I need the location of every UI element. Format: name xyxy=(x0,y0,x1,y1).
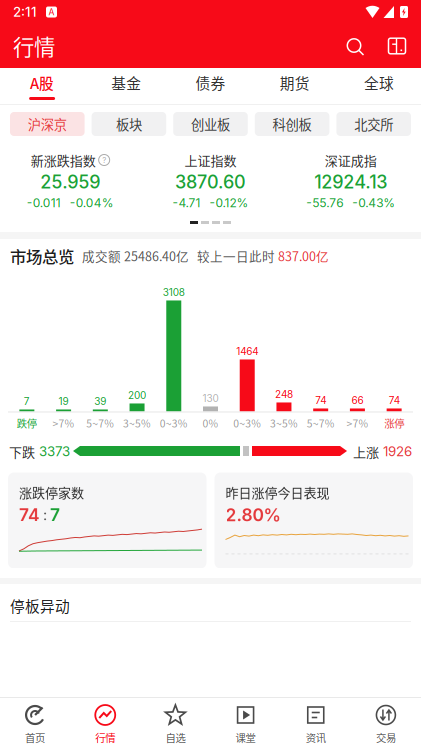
staticText: 2:11 xyxy=(13,4,37,20)
staticText: 首页 xyxy=(25,730,45,745)
staticText: -0.12% xyxy=(209,196,248,210)
staticText: 全球 xyxy=(364,72,394,93)
button[interactable]: 课堂 xyxy=(210,698,281,748)
staticText: 资讯 xyxy=(306,730,326,745)
staticText: 3870.60 xyxy=(175,171,246,193)
staticText: 74 xyxy=(389,394,400,406)
staticText: 0~3% xyxy=(160,415,188,431)
staticText: -55.76 xyxy=(306,196,343,210)
button[interactable]: 行情 xyxy=(70,698,140,748)
staticText: A xyxy=(48,7,54,17)
button[interactable]: 资讯 xyxy=(281,698,351,748)
staticText: 沪深京 xyxy=(28,114,67,134)
staticText: 3108 xyxy=(163,286,185,298)
staticText: 行情 xyxy=(13,31,55,61)
staticText: >7% xyxy=(346,415,368,431)
staticText: 1464 xyxy=(236,345,258,357)
staticText: 昨日涨停今日表现 xyxy=(225,482,329,501)
staticText: 债券 xyxy=(195,72,225,93)
staticText: 创业板 xyxy=(191,114,230,134)
staticText: 课堂 xyxy=(236,730,256,745)
staticText: 涨跌停家数 xyxy=(19,482,84,501)
staticText: -4.71 xyxy=(172,196,200,210)
staticText: 上证指数 xyxy=(184,150,236,169)
staticText: 25.959 xyxy=(40,171,100,193)
button[interactable]: 创业板 xyxy=(173,112,248,136)
staticText: 行情 xyxy=(95,730,115,745)
staticText: 较上一日此时 xyxy=(197,247,275,265)
button[interactable]: 基金 xyxy=(84,68,168,104)
staticText: 0% xyxy=(202,415,218,431)
staticText: 7 xyxy=(24,395,30,407)
staticText: 成交额 25486.40亿 xyxy=(82,247,189,265)
staticText: 停板异动 xyxy=(10,595,70,616)
button[interactable]: 自选 xyxy=(140,698,210,748)
staticText: 跌停 xyxy=(17,415,37,431)
button[interactable]: 全球 xyxy=(337,68,421,104)
button[interactable]: 涨跌停家数 xyxy=(8,472,206,568)
button[interactable]: 搜索 xyxy=(344,35,366,57)
button[interactable]: 交易 xyxy=(351,698,421,748)
staticText: 0~3% xyxy=(233,415,261,431)
staticText: 2.80% xyxy=(225,504,280,525)
button[interactable]: 北交所 xyxy=(336,112,411,136)
button[interactable]: 昨日涨停今日表现 xyxy=(214,472,413,568)
staticText: 深证成指 xyxy=(325,150,377,169)
staticText: 5~7% xyxy=(86,415,114,431)
staticText: -0.43% xyxy=(352,196,395,210)
staticText: 科创板 xyxy=(273,114,312,134)
button[interactable]: 债券 xyxy=(168,68,253,104)
staticText: A股 xyxy=(30,72,54,93)
staticText: 1926 xyxy=(383,443,412,459)
button[interactable]: 板块 xyxy=(92,112,166,136)
staticText: 837.00亿 xyxy=(278,247,329,265)
staticText: 12924.13 xyxy=(314,171,387,193)
staticText: 130 xyxy=(202,392,218,404)
staticText: -0.011 xyxy=(27,196,61,210)
staticText: : xyxy=(43,506,47,524)
staticText: 涨停 xyxy=(384,415,404,431)
staticText: 3~5% xyxy=(123,415,151,431)
button[interactable]: 科创板 xyxy=(255,112,329,136)
staticText: 下跌 xyxy=(9,442,35,461)
staticText: 交易 xyxy=(376,730,396,745)
staticText: 19 xyxy=(59,395,69,407)
button[interactable]: 首页 xyxy=(0,698,70,748)
staticText: 74 xyxy=(315,394,326,406)
staticText: 200 xyxy=(128,389,146,401)
staticText: 39 xyxy=(94,395,106,407)
staticText: 5~7% xyxy=(307,415,335,431)
button[interactable]: 设备 xyxy=(366,35,408,57)
staticText: 北交所 xyxy=(354,114,393,134)
button[interactable]: 期货 xyxy=(253,68,337,104)
staticText: 上涨 xyxy=(353,442,379,461)
staticText: 新涨跌指数 xyxy=(31,150,96,169)
staticText: 基金 xyxy=(111,72,141,93)
staticText: 市场总览 xyxy=(10,244,74,268)
staticText: 7 xyxy=(50,504,60,525)
staticText: 3373 xyxy=(39,443,70,459)
staticText: 自选 xyxy=(165,730,185,745)
staticText: ? xyxy=(102,155,106,165)
staticText: >7% xyxy=(53,415,75,431)
button[interactable]: A股 xyxy=(0,68,84,104)
staticText: 66 xyxy=(351,394,363,406)
staticText: 74 xyxy=(19,504,40,525)
staticText: 板块 xyxy=(116,114,142,134)
staticText: 3~5% xyxy=(270,415,298,431)
staticText: 248 xyxy=(275,388,293,400)
staticText: 期货 xyxy=(280,72,310,93)
staticText: -0.04% xyxy=(70,196,114,210)
button[interactable]: 沪深京 xyxy=(10,112,85,136)
